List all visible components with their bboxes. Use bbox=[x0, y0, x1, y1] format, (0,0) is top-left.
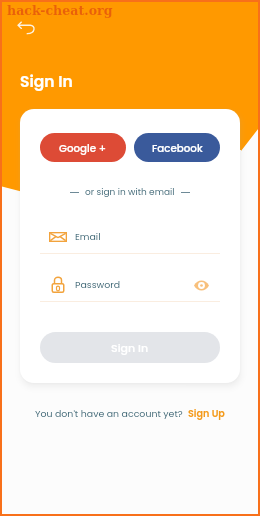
staticText: Sign In bbox=[111, 340, 149, 355]
staticText: Facebook bbox=[152, 141, 203, 155]
staticText: Sign Up bbox=[188, 407, 225, 420]
staticText: hack-cheat.org bbox=[7, 3, 113, 18]
button[interactable]: Back bbox=[10, 14, 42, 46]
button[interactable]: Google + bbox=[40, 133, 126, 162]
staticText: Password bbox=[75, 278, 121, 291]
staticText: Google + bbox=[59, 141, 107, 155]
staticText: Email bbox=[75, 230, 101, 243]
button[interactable]: Sign In bbox=[40, 332, 220, 363]
staticText: You don't have an account yet? bbox=[35, 407, 183, 420]
staticText: Sign In bbox=[20, 71, 73, 93]
button[interactable]: Sign Up bbox=[188, 407, 225, 420]
button[interactable]: Facebook bbox=[134, 133, 220, 162]
button[interactable]: Show password bbox=[187, 272, 215, 298]
staticText: or sign in with email bbox=[85, 186, 175, 199]
